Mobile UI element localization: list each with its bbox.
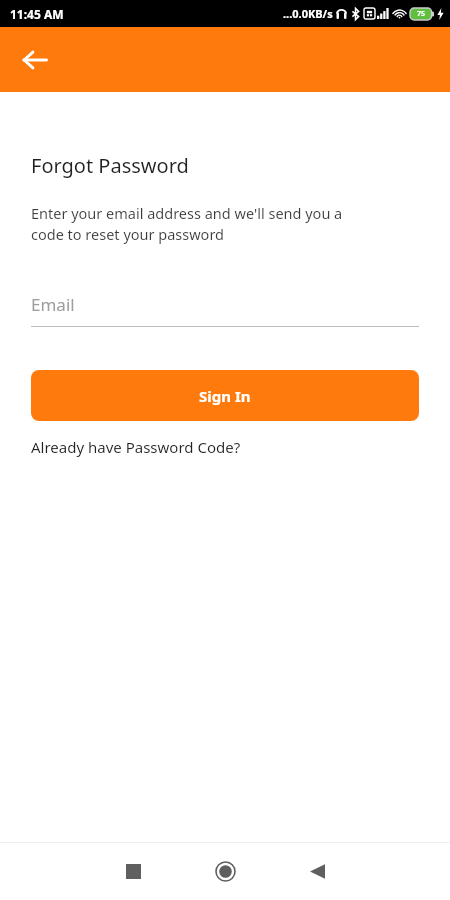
staticText: Forgot Password (31, 152, 189, 179)
staticText: 75 (417, 9, 426, 19)
staticText: 11:45 AM (10, 6, 64, 22)
staticText: ...0.0KB/s (283, 6, 333, 21)
button[interactable]: Home (179, 843, 271, 900)
button[interactable]: Recents (87, 843, 179, 900)
button[interactable]: Already have Password Code? (31, 437, 241, 457)
staticText: Email (31, 293, 75, 316)
button[interactable]: Sign In (31, 370, 419, 421)
button[interactable]: Back (12, 37, 58, 83)
button[interactable]: Email (31, 293, 419, 327)
staticText: Sign In (199, 386, 251, 406)
button[interactable]: Back (271, 843, 363, 900)
staticText: Enter your email address and we'll send … (31, 203, 343, 245)
staticText: Already have Password Code? (31, 437, 241, 457)
